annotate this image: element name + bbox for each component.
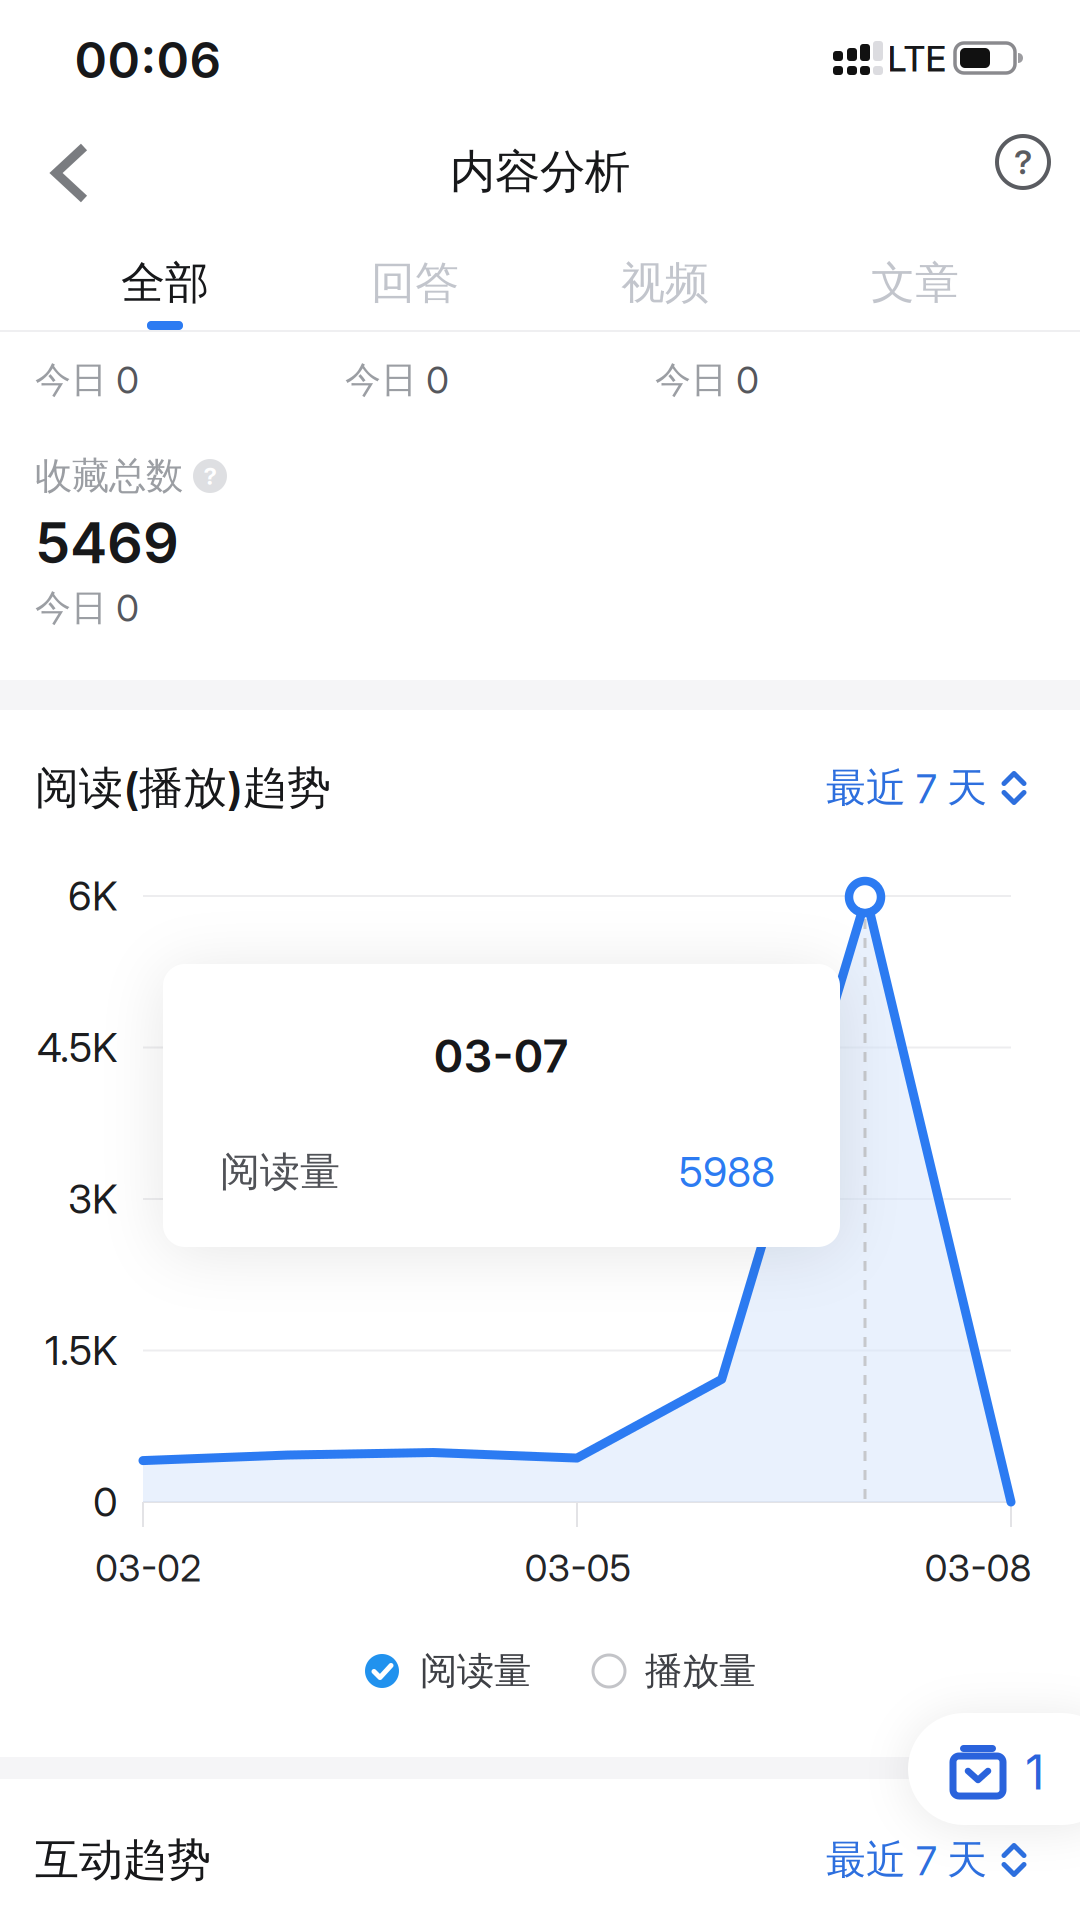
button[interactable]: 视频 (540, 243, 790, 323)
staticText: 5988 (679, 1148, 775, 1196)
button[interactable]: Help (983, 122, 1063, 202)
staticText: 03-05 (524, 1546, 631, 1590)
button[interactable]: 全部 (40, 243, 290, 323)
staticText: 6K (68, 872, 118, 920)
staticText: 今日 (655, 358, 727, 402)
staticText: 1.5K (45, 1327, 118, 1374)
staticText: 03-07 (433, 1029, 568, 1083)
button[interactable]: 阅读量 (365, 1641, 655, 1701)
staticText: 03-08 (924, 1546, 1031, 1590)
staticText: 03-02 (95, 1546, 201, 1590)
button[interactable]: 播放量 (593, 1641, 883, 1701)
staticText: 0 (116, 358, 139, 402)
staticText: 最近 7 天 (826, 1835, 987, 1884)
staticText: 1 (1025, 1744, 1045, 1800)
staticText: 阅读量 (220, 1147, 340, 1196)
staticText: 今日 (35, 358, 107, 402)
button[interactable]: 收件箱 1 (908, 1713, 1080, 1825)
button[interactable]: 最近 7 天 (727, 759, 1027, 817)
button[interactable]: 最近 7 天 (727, 1831, 1027, 1889)
staticText: 4.5K (37, 1024, 118, 1071)
staticText: 播放量 (645, 1648, 756, 1694)
staticText: 全部 (121, 256, 209, 310)
staticText: 文章 (871, 256, 959, 310)
staticText: 收藏总数 (35, 453, 183, 499)
staticText: 今日 (35, 586, 107, 630)
button[interactable]: Back (25, 127, 115, 217)
staticText: 最近 7 天 (826, 763, 987, 812)
staticText: ? (203, 462, 216, 490)
staticText: 视频 (621, 256, 709, 310)
staticText: 0 (116, 586, 139, 630)
staticText: 0 (426, 358, 449, 402)
staticText: 3K (68, 1175, 118, 1223)
staticText: 0 (736, 358, 759, 402)
staticText: LTE (887, 39, 946, 79)
button[interactable]: 收藏总数说明 (193, 459, 227, 493)
staticText: 阅读量 (420, 1648, 531, 1694)
button[interactable]: 文章 (790, 243, 1040, 323)
staticText: 阅读(播放)趋势 (35, 761, 331, 815)
staticText: 5469 (35, 510, 179, 576)
staticText: 00:06 (74, 31, 221, 89)
staticText: 互动趋势 (35, 1833, 211, 1887)
staticText: 今日 (345, 358, 417, 402)
button[interactable]: 回答 (290, 243, 540, 323)
staticText: 内容分析 (450, 144, 630, 200)
staticText: 回答 (371, 256, 459, 310)
staticText: 0 (93, 1478, 118, 1526)
staticText: ? (1014, 142, 1032, 182)
